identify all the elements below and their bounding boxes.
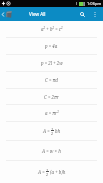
button[interactable]: C = πd <box>0 72 103 88</box>
staticText: 1:06pm <box>87 1 102 6</box>
staticText: bh <box>55 128 61 134</box>
staticText: C = πd <box>45 77 58 83</box>
staticText: A = <box>43 128 50 134</box>
staticText: 1 <box>46 168 49 171</box>
staticText: 2 <box>51 131 54 135</box>
button[interactable]: p = 2l + 2w <box>0 55 103 71</box>
button[interactable]: p = 4a <box>0 38 103 54</box>
staticText: A = w × h <box>42 148 61 154</box>
button[interactable]: A = <box>0 161 103 183</box>
staticText: C = 2πr <box>44 94 59 100</box>
staticText: p = 4a <box>45 43 58 49</box>
button[interactable]: A = w × h <box>0 141 103 160</box>
staticText: 2 <box>46 172 49 176</box>
button[interactable]: C = 2πr <box>0 89 103 104</box>
staticText: A = <box>38 169 45 175</box>
button[interactable]: Navigate up <box>0 7 6 21</box>
staticText: (a + b)h <box>50 169 66 175</box>
button[interactable]: a2 + b2 = c2 <box>0 21 103 37</box>
staticText: p = 2l + 2w <box>41 60 63 66</box>
button[interactable]: a = πr2 <box>0 105 103 121</box>
button[interactable]: Search <box>76 7 88 21</box>
staticText: 1 <box>51 127 54 130</box>
button[interactable]: More options <box>90 7 100 21</box>
staticText: a = πr2 <box>45 110 59 116</box>
button[interactable]: A = <box>0 122 103 140</box>
staticText: a2 + b2 = c2 <box>41 26 63 32</box>
staticText: View All <box>29 11 46 17</box>
